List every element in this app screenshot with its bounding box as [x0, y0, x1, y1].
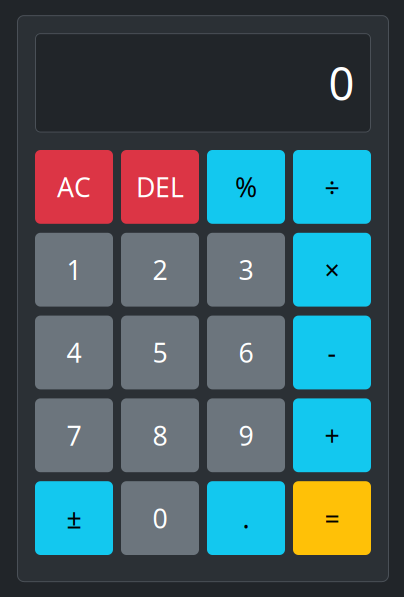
staticText: 0	[152, 500, 167, 536]
button[interactable]: 9	[207, 398, 285, 472]
button[interactable]: ±	[35, 481, 113, 555]
button[interactable]: 1	[35, 233, 113, 307]
staticText: -	[327, 335, 336, 370]
staticText: 5	[152, 335, 167, 370]
button[interactable]: 3	[207, 233, 285, 307]
staticText: AC	[57, 169, 91, 205]
staticText: DEL	[136, 169, 184, 205]
staticText: =	[324, 500, 339, 536]
button[interactable]: =	[293, 481, 371, 555]
button[interactable]: 7	[35, 398, 113, 472]
button[interactable]: ×	[293, 233, 371, 307]
button[interactable]: DEL	[121, 150, 199, 224]
button[interactable]: 5	[121, 316, 199, 389]
staticText: 6	[238, 335, 253, 370]
button[interactable]: 2	[121, 233, 199, 307]
staticText: .	[242, 500, 249, 536]
button[interactable]: -	[293, 316, 371, 389]
staticText: 0	[329, 53, 355, 113]
button[interactable]: 6	[207, 316, 285, 389]
button[interactable]: +	[293, 398, 371, 472]
staticText: ÷	[324, 169, 339, 205]
button[interactable]: AC	[35, 150, 113, 224]
staticText: 7	[66, 418, 81, 453]
staticText: ×	[324, 252, 339, 287]
staticText: 3	[238, 252, 253, 287]
button[interactable]: 8	[121, 398, 199, 472]
staticText: 9	[238, 418, 253, 453]
staticText: +	[324, 418, 339, 453]
button[interactable]: %	[207, 150, 285, 224]
staticText: %	[235, 169, 257, 205]
button[interactable]: ÷	[293, 150, 371, 224]
staticText: 1	[66, 252, 81, 287]
button[interactable]: 4	[35, 316, 113, 389]
staticText: 2	[152, 252, 167, 287]
button[interactable]: .	[207, 481, 285, 555]
staticText: ±	[66, 500, 81, 536]
button[interactable]: 0	[121, 481, 199, 555]
staticText: 8	[152, 418, 167, 453]
staticText: 4	[66, 335, 81, 370]
